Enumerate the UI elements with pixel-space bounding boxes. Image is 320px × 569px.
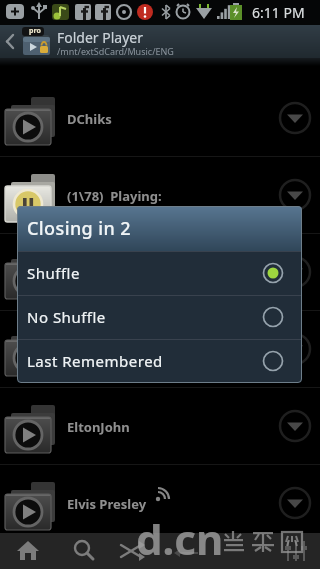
staticText: DChiks [67,110,112,128]
button[interactable] [0,311,320,388]
staticText: Elvis Presley [67,495,147,513]
staticText: No Shuffle [27,307,106,327]
button[interactable] [279,410,311,442]
button[interactable] [279,179,311,211]
staticText: 6:11 PM [252,3,305,22]
button[interactable]: (1\78) Playing: [0,157,320,234]
staticText: Folder Player [57,28,144,47]
staticText: EltonJohn [67,418,130,436]
staticText: (1\78) Playing: [67,187,162,205]
button[interactable]: Shuffle [17,251,302,295]
button[interactable] [0,234,320,311]
button[interactable]: DChiks [0,80,320,157]
button[interactable] [279,102,311,134]
staticText: Last Remembered [27,351,163,371]
button[interactable]: Elvis Presley [0,465,320,542]
button[interactable] [56,533,112,569]
button[interactable] [0,25,20,58]
button[interactable] [279,256,311,288]
staticText: pro [29,26,41,36]
button[interactable] [105,533,161,569]
staticText: Shuffle [27,263,80,283]
staticText: /mnt/extSdCard/Music/ENG [57,45,174,57]
button[interactable]: EltonJohn [0,388,320,465]
button[interactable] [279,487,311,519]
button[interactable]: Last Remembered [17,339,302,383]
staticText: Closing in 2 [27,216,131,241]
staticText: d.cn [136,510,224,567]
button[interactable] [279,333,311,365]
button[interactable]: No Shuffle [17,295,302,339]
button[interactable] [0,533,56,569]
